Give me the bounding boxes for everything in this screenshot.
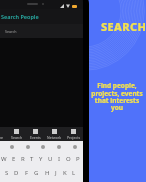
staticText: Find people, projects, events that inter… — [89, 81, 145, 112]
staticText: Events — [30, 135, 41, 140]
staticText: SEARCH — [101, 19, 146, 34]
staticText: Projects — [67, 135, 81, 140]
staticText: W — [1, 155, 7, 163]
staticText: R — [21, 155, 25, 163]
staticText: S — [5, 169, 9, 177]
staticText: D — [14, 169, 19, 177]
button[interactable]: Search — [0, 24, 83, 38]
button[interactable]: Events — [26, 127, 45, 141]
staticText: P — [76, 155, 80, 163]
staticText: O — [66, 155, 71, 163]
staticText: Search — [11, 135, 23, 140]
staticText: Search People — [1, 13, 39, 20]
staticText: L — [72, 169, 76, 177]
staticText: E — [12, 155, 16, 163]
button[interactable]: Projects — [64, 127, 83, 141]
staticText: U — [48, 155, 53, 163]
staticText: Y — [39, 155, 43, 163]
button[interactable]: Network — [45, 127, 64, 141]
staticText: Network — [47, 135, 62, 140]
staticText: G — [34, 169, 39, 177]
staticText: K — [63, 169, 67, 177]
staticText: I — [58, 155, 61, 163]
staticText: Search — [5, 29, 17, 34]
staticText: T — [30, 155, 34, 163]
staticText: F — [25, 169, 29, 177]
staticText: J — [55, 169, 57, 177]
staticText: H — [45, 169, 50, 177]
staticText: Home — [0, 135, 3, 140]
button[interactable]: Search — [7, 127, 26, 141]
button[interactable]: Home — [0, 127, 7, 141]
